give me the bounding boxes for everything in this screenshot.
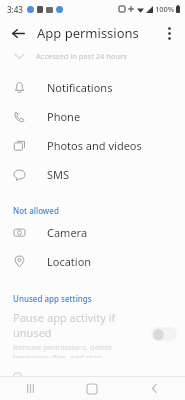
button[interactable]: Pause app activity if unused bbox=[0, 310, 185, 358]
button[interactable]: Camera bbox=[0, 218, 185, 247]
button[interactable]: Recent apps bbox=[0, 377, 61, 400]
button[interactable]: Phone bbox=[0, 102, 185, 131]
button[interactable]: Pause app activity if unused toggle bbox=[151, 327, 177, 341]
staticText: App permissions bbox=[37, 24, 139, 42]
staticText: Location bbox=[47, 254, 92, 269]
staticText: Unused app settings bbox=[13, 293, 92, 304]
button[interactable]: Location bbox=[0, 247, 185, 276]
staticText: Not allowed bbox=[13, 205, 59, 216]
button[interactable]: Photos and videos bbox=[0, 131, 185, 160]
button[interactable]: SMS bbox=[0, 160, 185, 189]
staticText: Phone bbox=[47, 109, 81, 124]
button[interactable]: Back bbox=[4, 19, 32, 47]
staticText: 3:43 bbox=[7, 4, 23, 15]
staticText: Accessed in past 24 hours bbox=[36, 51, 127, 61]
staticText: Photos and videos bbox=[47, 138, 142, 153]
button[interactable]: Notifications bbox=[0, 73, 185, 102]
staticText: Notifications bbox=[47, 80, 113, 95]
staticText: SMS bbox=[47, 167, 70, 182]
staticText: 100% bbox=[155, 4, 175, 14]
staticText: To protect your data, permissions for th… bbox=[13, 387, 173, 400]
button[interactable]: More options bbox=[156, 20, 182, 46]
staticText: Camera bbox=[47, 225, 88, 240]
staticText: Pause app activity if unused bbox=[13, 310, 145, 340]
button[interactable]: Home bbox=[61, 377, 123, 400]
staticText: Remove permissions, delete temporary fil… bbox=[13, 342, 145, 358]
button[interactable]: Back bbox=[123, 377, 185, 400]
